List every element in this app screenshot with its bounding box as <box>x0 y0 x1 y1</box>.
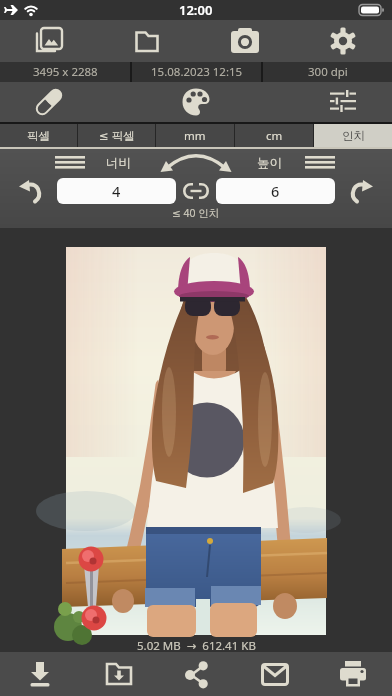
staticText: 5.02 MB → 612.41 KB <box>137 638 256 652</box>
button[interactable] <box>0 652 79 696</box>
button[interactable] <box>236 652 314 696</box>
button[interactable] <box>348 179 375 203</box>
button[interactable]: mm <box>156 124 234 147</box>
staticText: ≤ 40 인치 <box>172 206 220 220</box>
button[interactable] <box>55 156 85 170</box>
staticText: 300 dpi <box>308 64 348 80</box>
button[interactable]: 6 <box>216 178 335 204</box>
staticText: 4 <box>112 181 121 201</box>
button[interactable]: 4 <box>57 178 176 204</box>
button[interactable] <box>158 652 236 696</box>
staticText: 3495 x 2288 <box>33 64 98 80</box>
button[interactable]: 인치 <box>314 124 392 147</box>
staticText: cm <box>266 128 283 144</box>
button[interactable] <box>196 20 294 62</box>
button[interactable] <box>305 156 335 170</box>
button[interactable] <box>294 20 392 62</box>
button[interactable] <box>294 82 392 122</box>
staticText: mm <box>184 128 206 144</box>
button[interactable] <box>314 652 392 696</box>
button[interactable]: cm <box>235 124 313 147</box>
staticText: 6 <box>271 181 280 201</box>
button[interactable] <box>79 652 158 696</box>
button[interactable] <box>0 20 98 62</box>
button[interactable]: 픽셀 <box>0 124 77 147</box>
button[interactable]: ≤ 픽셀 <box>78 124 155 147</box>
staticText: 높이 <box>257 155 282 171</box>
button[interactable] <box>0 82 98 122</box>
staticText: ≤ 픽셀 <box>99 128 135 144</box>
staticText: 12:00 <box>179 1 213 19</box>
staticText: 인치 <box>342 129 365 143</box>
button[interactable] <box>17 179 44 203</box>
staticText: 픽셀 <box>27 129 50 143</box>
staticText: 15.08.2023 12:15 <box>151 64 243 80</box>
button[interactable] <box>183 183 209 199</box>
staticText: 너비 <box>106 155 131 171</box>
button[interactable] <box>98 20 196 62</box>
button[interactable] <box>147 82 245 122</box>
button[interactable] <box>66 247 326 635</box>
button[interactable]: 3495 x 2288 <box>0 62 130 82</box>
